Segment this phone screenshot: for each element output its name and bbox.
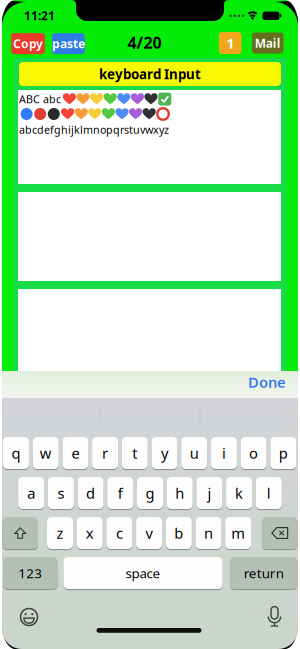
button[interactable]: g [137, 476, 163, 510]
button[interactable]: Delete [262, 516, 297, 550]
staticText: f [118, 483, 123, 503]
button[interactable]: r [92, 436, 118, 470]
button[interactable]: e [62, 436, 88, 470]
staticText: h [175, 483, 184, 503]
staticText: t [132, 443, 137, 463]
staticText: space [125, 564, 160, 582]
button[interactable]: Emoji [20, 608, 38, 626]
button[interactable]: o [241, 436, 267, 470]
button[interactable]: j [196, 476, 222, 510]
staticText: i [222, 443, 226, 463]
button[interactable]: v [136, 516, 162, 550]
button[interactable]: Dictate [267, 607, 282, 627]
staticText: s [57, 483, 64, 503]
staticText: c [116, 523, 123, 543]
staticText: u [190, 443, 199, 463]
button[interactable]: c [106, 516, 132, 550]
button[interactable]: i [211, 436, 237, 470]
button[interactable]: y [151, 436, 177, 470]
button[interactable]: paste [52, 33, 85, 54]
button[interactable]: f [107, 476, 133, 510]
button[interactable]: 123 [3, 556, 57, 590]
staticText: 123 [18, 564, 42, 582]
button[interactable]: t [122, 436, 148, 470]
button[interactable]: w [33, 436, 59, 470]
button[interactable]: b [166, 516, 192, 550]
staticText: y [161, 443, 168, 463]
staticText: Mail [255, 35, 281, 51]
staticText: 4/20 [127, 32, 161, 53]
button[interactable]: n [195, 516, 221, 550]
button[interactable]: h [167, 476, 193, 510]
button[interactable]: space [63, 556, 222, 590]
button[interactable]: z [47, 516, 73, 550]
button[interactable]: Done [242, 371, 292, 393]
staticText: 11:21 [24, 7, 55, 23]
staticText: ABC abc [19, 92, 61, 106]
button[interactable]: a [18, 476, 44, 510]
staticText: q [11, 443, 20, 463]
staticText: j [207, 483, 211, 503]
button[interactable]: s [48, 476, 74, 510]
staticText: x [86, 523, 94, 543]
button[interactable]: Copy [11, 33, 45, 54]
button[interactable]: 1 [219, 32, 241, 54]
staticText: g [145, 483, 154, 503]
button[interactable]: k [226, 476, 252, 510]
staticText: o [249, 443, 258, 463]
staticText: return [244, 564, 284, 582]
staticText: m [231, 523, 245, 543]
button[interactable]: u [181, 436, 207, 470]
staticText: z [56, 523, 63, 543]
staticText: r [102, 443, 108, 463]
staticText: e [71, 443, 79, 463]
staticText: d [86, 483, 95, 503]
button[interactable]: l [256, 476, 282, 510]
button[interactable]: x [77, 516, 103, 550]
staticText: keyboard Input [99, 65, 201, 83]
staticText: k [235, 483, 243, 503]
staticText: b [174, 523, 183, 543]
staticText: Done [248, 372, 286, 392]
staticText: abcdefghijklmnopqrstuvwxyz [19, 122, 169, 137]
button[interactable]: m [225, 516, 251, 550]
staticText: w [40, 443, 52, 463]
staticText: Copy [13, 36, 43, 51]
button[interactable]: Mail [252, 32, 283, 53]
staticText: a [27, 483, 35, 503]
button[interactable]: d [78, 476, 104, 510]
button[interactable]: p [270, 436, 296, 470]
button[interactable]: return [230, 556, 297, 590]
staticText: n [204, 523, 213, 543]
button[interactable]: q [3, 436, 29, 470]
staticText: l [267, 483, 271, 503]
staticText: v [146, 523, 153, 543]
button[interactable]: Shift [2, 516, 38, 550]
staticText: p [279, 443, 288, 463]
staticText: 1 [226, 33, 234, 53]
staticText: paste [52, 36, 85, 51]
